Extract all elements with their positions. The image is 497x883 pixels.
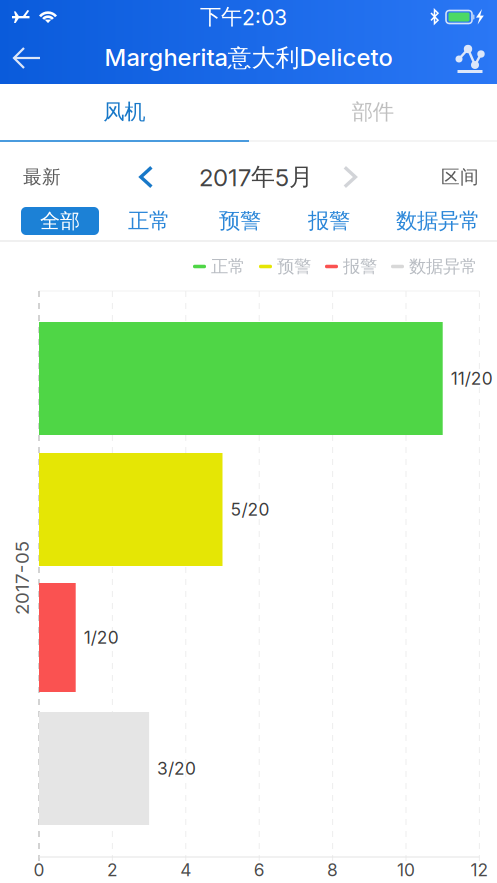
staticText: 最新 bbox=[23, 165, 61, 189]
staticText: 2 bbox=[107, 859, 118, 880]
staticText: 1/20 bbox=[84, 627, 119, 648]
staticText: 数据异常 bbox=[409, 256, 477, 277]
button[interactable]: 预警 bbox=[211, 203, 269, 239]
button[interactable]: 数据异常 bbox=[394, 203, 482, 239]
staticText: 12 bbox=[470, 859, 488, 880]
staticText: 下午2:03 bbox=[200, 4, 287, 30]
staticText: 3/20 bbox=[157, 758, 196, 779]
staticText: 部件 bbox=[352, 99, 394, 125]
staticText: 0 bbox=[33, 859, 44, 880]
staticText: 风机 bbox=[103, 99, 145, 125]
staticText: 6 bbox=[254, 859, 265, 880]
staticText: 10 bbox=[397, 859, 415, 880]
button[interactable]: Previous month bbox=[126, 157, 166, 197]
button[interactable]: 风机 bbox=[0, 84, 248, 140]
staticText: Margherita意大利Deliceto bbox=[104, 43, 392, 73]
staticText: 11/20 bbox=[451, 368, 493, 389]
staticText: 预警 bbox=[219, 208, 261, 234]
button[interactable]: 正常 bbox=[120, 203, 178, 239]
staticText: 5/20 bbox=[230, 499, 269, 520]
staticText: 4 bbox=[180, 859, 191, 880]
staticText: 报警 bbox=[308, 208, 350, 234]
button[interactable]: 全部 bbox=[21, 207, 99, 235]
staticText: 报警 bbox=[343, 256, 377, 277]
staticText: 正常 bbox=[211, 256, 245, 277]
staticText: 2017-05 bbox=[0, 567, 59, 589]
button[interactable]: 部件 bbox=[248, 84, 497, 140]
staticText: 正常 bbox=[128, 208, 170, 234]
staticText: 全部 bbox=[40, 208, 80, 234]
button[interactable]: 区间 bbox=[370, 157, 480, 197]
staticText: 8 bbox=[327, 859, 338, 880]
staticText: 区间 bbox=[441, 165, 479, 189]
staticText: 2017年5月 bbox=[199, 162, 313, 192]
button[interactable]: Next month bbox=[330, 157, 370, 197]
button[interactable]: 报警 bbox=[300, 203, 358, 239]
button[interactable]: Chart bbox=[443, 35, 497, 81]
staticText: 数据异常 bbox=[396, 208, 480, 234]
button[interactable]: Back bbox=[0, 35, 54, 81]
staticText: 预警 bbox=[277, 256, 311, 277]
button[interactable]: 最新 bbox=[0, 157, 79, 197]
